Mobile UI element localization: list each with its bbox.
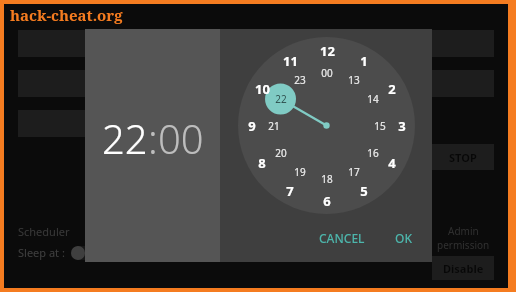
staticText: OK bbox=[395, 230, 412, 246]
staticText: permission bbox=[437, 238, 490, 252]
button[interactable]: 11 bbox=[279, 50, 301, 72]
button[interactable]: 16 bbox=[362, 142, 384, 164]
staticText: 45 min bbox=[360, 36, 397, 51]
button[interactable]: 6 bbox=[316, 190, 338, 212]
staticText: 12 bbox=[320, 42, 335, 60]
button[interactable]: 23 bbox=[289, 69, 311, 91]
staticText: 2 bbox=[388, 80, 396, 98]
button[interactable]: 2 bbox=[381, 78, 403, 100]
button[interactable]: 12 bbox=[316, 40, 338, 62]
button[interactable]: 120 min bbox=[263, 70, 494, 97]
staticText: 5 bbox=[360, 182, 368, 200]
button[interactable]: 5 bbox=[353, 180, 375, 202]
staticText: 00 bbox=[321, 66, 333, 80]
button[interactable]: 19 bbox=[289, 161, 311, 183]
staticText: STOP bbox=[449, 150, 477, 165]
staticText: Sleep at : bbox=[18, 245, 65, 260]
staticText: 14 bbox=[367, 92, 379, 106]
staticText: 15 bbox=[374, 119, 386, 133]
staticText: 1 bbox=[360, 52, 368, 70]
button[interactable]: 00 bbox=[316, 62, 338, 84]
button[interactable]: 180 min bbox=[18, 110, 249, 137]
staticText: hack-cheat.org bbox=[10, 5, 123, 25]
staticText: 20 bbox=[275, 146, 287, 160]
staticText: 8 bbox=[258, 154, 266, 172]
button[interactable]: 14 bbox=[362, 88, 384, 110]
button[interactable]: STOP bbox=[432, 144, 494, 170]
staticText: 180 min bbox=[112, 116, 155, 131]
button[interactable]: OK bbox=[389, 226, 418, 250]
button[interactable]: 22 bbox=[270, 88, 292, 110]
staticText: 21 bbox=[268, 119, 280, 133]
staticText: 23 bbox=[294, 73, 306, 87]
button[interactable]: 20 bbox=[270, 142, 292, 164]
button[interactable]: 13 bbox=[343, 69, 365, 91]
button[interactable]: 60 min bbox=[18, 70, 249, 97]
button[interactable]: 10 bbox=[251, 78, 273, 100]
button[interactable]: Sleep toggle bbox=[71, 246, 105, 260]
staticText: 120 min bbox=[357, 76, 400, 91]
staticText: 4 bbox=[388, 154, 396, 172]
button[interactable]: CANCEL bbox=[313, 226, 371, 250]
button[interactable]: Disable bbox=[432, 256, 494, 280]
staticText: 13 bbox=[348, 73, 360, 87]
staticText: 0 bbox=[406, 143, 418, 170]
staticText: 3 bbox=[398, 117, 406, 135]
button[interactable]: 17 bbox=[343, 161, 365, 183]
staticText: Scheduler bbox=[18, 224, 70, 239]
button[interactable]: 8 bbox=[251, 152, 273, 174]
button[interactable]: 15 min bbox=[18, 30, 249, 57]
button[interactable]: 22 bbox=[102, 111, 204, 165]
button[interactable]: 3 bbox=[391, 115, 413, 137]
button[interactable]: 21 bbox=[263, 115, 285, 137]
staticText: 9 bbox=[248, 117, 256, 135]
button[interactable]: 15 bbox=[369, 115, 391, 137]
button[interactable]: 7 bbox=[279, 180, 301, 202]
staticText: 19 bbox=[294, 165, 306, 179]
button[interactable]: 1 bbox=[353, 50, 375, 72]
staticText: 7 bbox=[286, 182, 294, 200]
staticText: Disable bbox=[443, 261, 484, 276]
staticText: Admin bbox=[448, 224, 479, 238]
button[interactable]: 45 min bbox=[263, 30, 494, 57]
staticText: CANCEL bbox=[319, 230, 365, 246]
staticText: 00 bbox=[158, 111, 204, 165]
staticText: 16 bbox=[367, 146, 379, 160]
staticText: 17 bbox=[348, 165, 360, 179]
button[interactable]: 18 bbox=[316, 168, 338, 190]
staticText: : bbox=[148, 111, 158, 165]
button[interactable]: 4 bbox=[381, 152, 403, 174]
button[interactable]: 9 bbox=[241, 115, 263, 137]
staticText: 10 bbox=[255, 80, 270, 98]
staticText: 22 bbox=[102, 111, 148, 165]
staticText: 22 bbox=[275, 92, 287, 106]
staticText: 6 bbox=[323, 192, 331, 210]
staticText: 11 bbox=[283, 52, 298, 70]
staticText: 18 bbox=[321, 172, 333, 186]
